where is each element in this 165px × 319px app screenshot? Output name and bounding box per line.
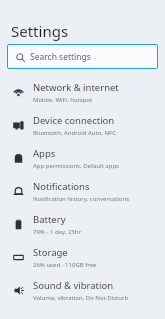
staticText: Notifications <box>33 180 90 193</box>
staticText: Notification history, conversations <box>33 195 130 203</box>
staticText: Mobile, WiFi, hotspot <box>33 96 93 104</box>
button[interactable]: Sound & vibration <box>0 274 165 307</box>
button[interactable]: Network & internet <box>0 76 165 109</box>
button[interactable]: Apps <box>0 142 165 175</box>
button[interactable]: Battery <box>0 208 165 241</box>
staticText: Settings <box>11 21 69 41</box>
staticText: 26% used - 110GB free <box>33 261 97 269</box>
staticText: 79% - 1 day, 23hr <box>33 228 81 236</box>
staticText: Battery <box>33 213 66 226</box>
staticText: Device connection <box>33 114 115 127</box>
button[interactable]: Notifications <box>0 175 165 208</box>
staticText: Apps <box>33 147 56 160</box>
staticText: Network & internet <box>33 81 119 94</box>
button[interactable]: Device connection <box>0 109 165 142</box>
staticText: Bluetooth, Android Auto, NFC <box>33 129 116 137</box>
button[interactable]: Storage <box>0 241 165 274</box>
button[interactable]: Search settings <box>7 44 158 69</box>
staticText: Volume, vibration, Do Not Disturb <box>33 294 129 302</box>
staticText: Search settings <box>30 51 91 63</box>
staticText: App permissions, Default apps <box>33 162 119 170</box>
staticText: Sound & vibration <box>33 279 114 292</box>
staticText: Storage <box>33 246 68 259</box>
